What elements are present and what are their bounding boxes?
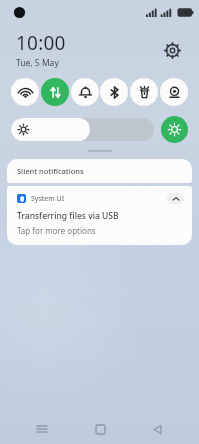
staticText: 10:00 — [16, 30, 66, 56]
button[interactable]: Recents — [27, 414, 57, 444]
staticText: Tap for more options — [17, 225, 96, 236]
button[interactable]: Flashlight — [130, 78, 158, 106]
button[interactable]: Home — [85, 414, 115, 444]
staticText: Transferring files via USB — [17, 210, 119, 222]
button[interactable]: Silent notifications — [7, 159, 192, 183]
button[interactable]: Auto brightness — [161, 116, 188, 143]
button[interactable]: Settings — [159, 37, 185, 63]
button[interactable]: Bluetooth — [100, 78, 128, 106]
button[interactable] — [11, 118, 154, 141]
button[interactable]: Mobile data — [41, 78, 69, 106]
button[interactable]: Sound — [71, 78, 99, 106]
button[interactable]: Location — [160, 78, 188, 106]
button[interactable]: Expand — [167, 193, 184, 204]
staticText: Silent notifications — [17, 166, 84, 176]
button[interactable]: Wi-Fi — [11, 78, 39, 106]
button[interactable]: Back — [142, 414, 172, 444]
staticText: Tue, 5 May — [16, 57, 59, 69]
button[interactable]: System UI — [7, 186, 192, 245]
staticText: System UI — [31, 194, 65, 204]
